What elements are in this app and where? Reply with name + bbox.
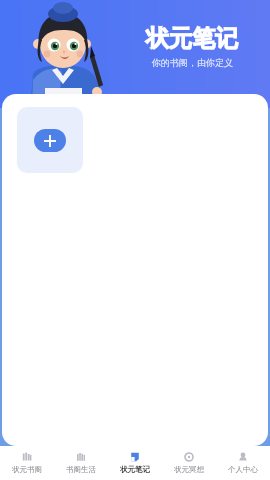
button[interactable]: 个人中心: [216, 446, 270, 480]
staticText: 你的书阁，由你定义: [152, 57, 233, 68]
other: 新建笔记: [34, 129, 66, 152]
staticText: 个人中心: [228, 465, 258, 474]
button[interactable]: 状元笔记: [108, 446, 162, 480]
button[interactable]: 状元书阁: [0, 446, 54, 480]
staticText: 状元笔记: [146, 24, 238, 53]
staticText: 状元冥想: [174, 465, 204, 474]
button[interactable]: 状元冥想: [162, 446, 216, 480]
staticText: 状元笔记: [120, 465, 150, 474]
button[interactable]: 书阁生活: [54, 446, 108, 480]
staticText: 书阁生活: [66, 465, 96, 474]
button[interactable]: 新建笔记: [17, 107, 83, 173]
staticText: 状元书阁: [12, 465, 42, 474]
